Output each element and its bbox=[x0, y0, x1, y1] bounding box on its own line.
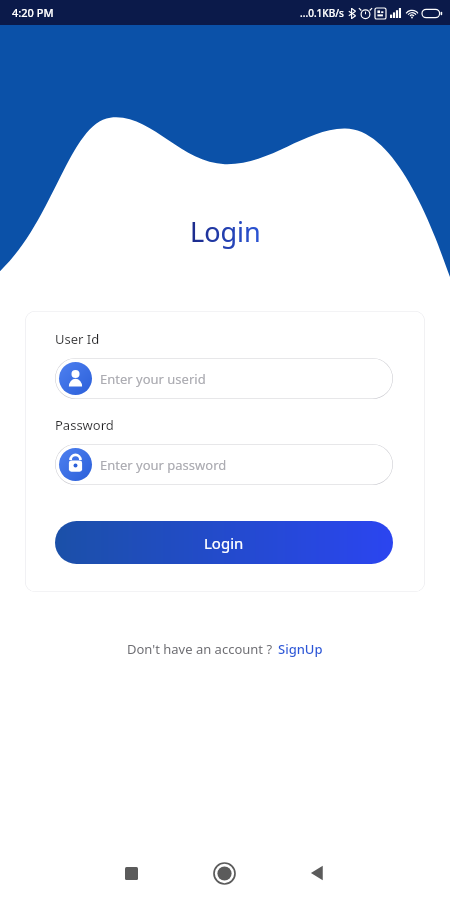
button[interactable]: Login bbox=[55, 521, 393, 564]
button[interactable]: Enter your password bbox=[55, 444, 393, 485]
button[interactable]: Back bbox=[295, 851, 339, 895]
button[interactable]: Recent apps bbox=[109, 851, 153, 895]
staticText: User Id bbox=[55, 330, 100, 348]
staticText: Enter your password bbox=[100, 456, 227, 474]
button[interactable]: Enter your userid bbox=[55, 358, 393, 399]
button[interactable]: Home bbox=[202, 851, 246, 895]
staticText: Password bbox=[55, 416, 114, 434]
button[interactable]: SignUp bbox=[278, 640, 323, 658]
staticText: Enter your userid bbox=[100, 370, 206, 388]
staticText: Don't have an account ? bbox=[127, 640, 273, 658]
staticText: 4:20 PM bbox=[12, 5, 54, 20]
staticText: Login bbox=[204, 533, 244, 553]
staticText: ...0.1KB/s bbox=[300, 6, 344, 20]
staticText: SignUp bbox=[278, 640, 323, 658]
staticText: Login bbox=[190, 213, 261, 250]
